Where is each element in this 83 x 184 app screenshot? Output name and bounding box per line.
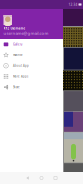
button[interactable]: Back <box>20 172 34 184</box>
button[interactable]: About App <box>0 60 63 71</box>
staticText: Favorite <box>13 53 23 57</box>
button[interactable]: Favorite <box>0 50 63 60</box>
staticText: Gallery <box>13 42 22 46</box>
button[interactable]: Share <box>0 82 63 92</box>
button[interactable]: Gallery <box>0 39 63 50</box>
staticText: username@gmail.com <box>3 30 48 36</box>
staticText: Share <box>13 85 20 89</box>
staticText: About App <box>13 64 29 67</box>
staticText: 12:34 <box>68 2 77 6</box>
button[interactable]: More Apps <box>0 71 63 82</box>
staticText: More Apps <box>13 75 28 78</box>
button[interactable]: Recents <box>48 172 62 184</box>
button[interactable]: Home <box>34 172 48 184</box>
staticText: XYZ Username <box>3 26 25 30</box>
